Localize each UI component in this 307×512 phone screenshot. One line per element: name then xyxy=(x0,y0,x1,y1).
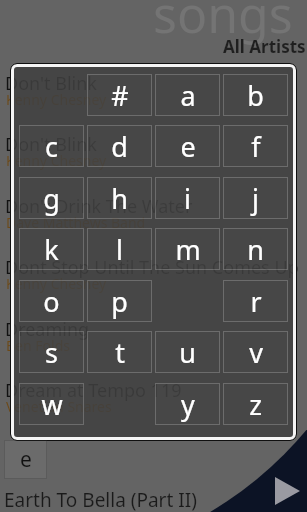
button[interactable]: # xyxy=(87,74,152,116)
staticText: i xyxy=(184,180,191,217)
button[interactable]: i xyxy=(155,177,220,219)
button[interactable]: n xyxy=(223,228,288,270)
staticText: f xyxy=(251,128,261,165)
button[interactable]: e xyxy=(4,440,47,479)
button[interactable]: w xyxy=(19,383,84,425)
button[interactable]: p xyxy=(87,280,152,322)
staticText: n xyxy=(247,231,264,268)
staticText: z xyxy=(249,386,262,423)
staticText: l xyxy=(116,231,123,268)
staticText: k xyxy=(44,231,59,268)
button[interactable]: e xyxy=(155,125,220,167)
button[interactable]: g xyxy=(19,177,84,219)
staticText: songs xyxy=(153,0,293,48)
staticText: y xyxy=(181,386,195,423)
staticText: Kenny Chesney xyxy=(6,151,107,170)
button[interactable]: l xyxy=(87,228,152,270)
staticText: p xyxy=(111,283,128,320)
button[interactable]: Don't Drink The Water xyxy=(0,194,307,512)
staticText: Dave Matthews Band xyxy=(6,213,146,232)
staticText: b xyxy=(247,77,264,114)
staticText: Kenny Chesney xyxy=(6,90,107,109)
button[interactable]: h xyxy=(87,177,152,219)
button[interactable]: Don't Blink xyxy=(0,71,307,512)
staticText: Don't Blink xyxy=(5,132,97,157)
button[interactable]: Dont Stop Until The Sun Comes Up xyxy=(0,255,307,512)
staticText: Don't Drink The Water xyxy=(5,194,193,219)
staticText: e xyxy=(180,128,196,165)
staticText: Dream at Tempo 119 xyxy=(5,378,182,403)
staticText: Ben Folds xyxy=(6,336,70,355)
button[interactable]: z xyxy=(223,383,288,425)
staticText: g xyxy=(43,180,60,217)
button[interactable]: t xyxy=(87,331,152,373)
staticText: r xyxy=(250,283,262,320)
button[interactable]: Play xyxy=(275,477,300,505)
button[interactable]: Dream at Tempo 119 xyxy=(0,378,307,512)
button[interactable]: Don't Blink xyxy=(0,132,307,512)
staticText: Kenny Chesney xyxy=(6,274,107,293)
staticText: Dont Stop Until The Sun Comes Up xyxy=(5,255,299,280)
staticText: m xyxy=(175,231,201,268)
button[interactable]: k xyxy=(19,228,84,270)
button[interactable]: o xyxy=(19,280,84,322)
staticText: w xyxy=(41,386,63,423)
button[interactable]: j xyxy=(223,177,288,219)
staticText: Venetian Snares xyxy=(6,397,112,416)
staticText: u xyxy=(179,334,196,371)
button[interactable]: v xyxy=(223,331,288,373)
staticText: d xyxy=(111,128,128,165)
staticText: Dreaming xyxy=(5,317,90,342)
staticText: o xyxy=(43,283,60,320)
button[interactable]: f xyxy=(223,125,288,167)
button[interactable]: y xyxy=(155,383,220,425)
staticText: a xyxy=(180,77,196,114)
button[interactable]: Dreaming xyxy=(0,317,307,512)
other: Alphabet index xyxy=(13,66,294,438)
button[interactable]: a xyxy=(155,74,220,116)
staticText: # xyxy=(111,77,129,114)
staticText: s xyxy=(45,334,58,371)
button[interactable]: c xyxy=(19,125,84,167)
button[interactable]: b xyxy=(223,74,288,116)
staticText: Don't Blink xyxy=(5,71,97,96)
button[interactable]: s xyxy=(19,331,84,373)
button[interactable]: u xyxy=(155,331,220,373)
button[interactable]: m xyxy=(155,228,220,270)
staticText: j xyxy=(252,180,259,217)
button[interactable]: r xyxy=(223,280,288,322)
button[interactable]: d xyxy=(87,125,152,167)
staticText: v xyxy=(249,334,263,371)
staticText: c xyxy=(45,128,58,165)
button[interactable]: Earth To Bella (Part II) xyxy=(4,487,197,512)
staticText: h xyxy=(111,180,128,217)
staticText: e xyxy=(20,445,32,474)
staticText: t xyxy=(115,334,125,371)
staticText: All Artists xyxy=(223,35,306,58)
